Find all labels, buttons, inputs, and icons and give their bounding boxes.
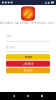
staticText: Cadastrar: [22, 62, 33, 65]
staticText: Aplicativo nao oficial - sem vinculo com…: [0, 21, 56, 25]
button[interactable]: Back: [7, 92, 21, 100]
staticText: Ajuda: [24, 69, 32, 72]
button[interactable]: Senha: [6, 46, 50, 52]
button[interactable]: CPF: [6, 35, 50, 41]
staticText: Entrar: [24, 55, 31, 59]
staticText: CPF: [6, 35, 11, 39]
button[interactable]: Recent apps: [35, 92, 49, 100]
staticText: Senha: [6, 46, 14, 49]
button[interactable]: Entrar: [6, 54, 50, 60]
button[interactable]: Home: [21, 92, 35, 100]
button[interactable]: Cadastrar: [6, 61, 50, 67]
button[interactable]: Ajuda: [6, 68, 50, 73]
